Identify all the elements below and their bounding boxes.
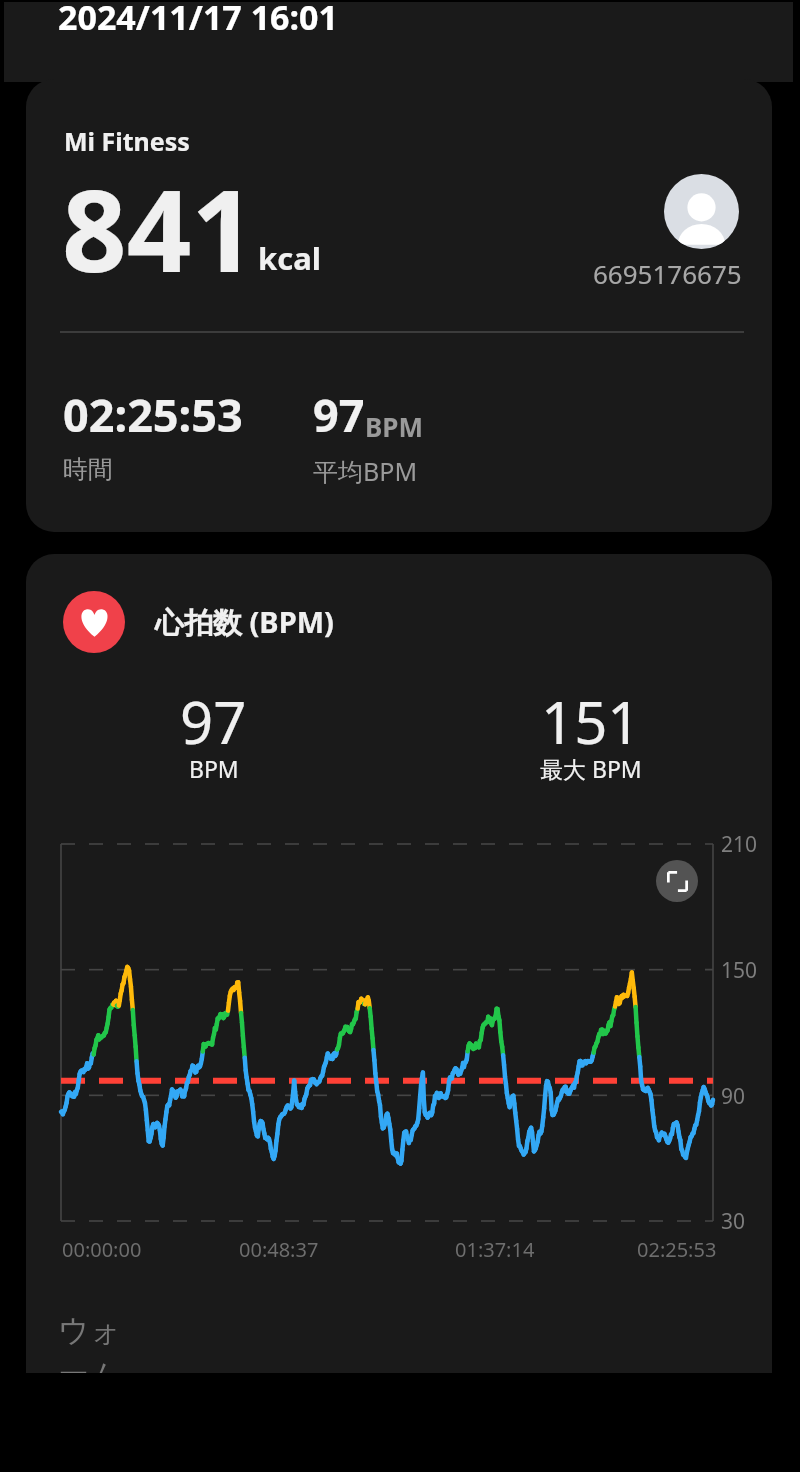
button[interactable]: Mi Fitness	[26, 79, 772, 532]
staticText: 時間	[63, 454, 113, 485]
staticText: 心拍数 (BPM)	[155, 602, 334, 642]
staticText: 6695176675	[593, 256, 742, 291]
button[interactable]: Expand chart	[656, 860, 698, 902]
staticText: 02:25:53	[63, 384, 243, 445]
staticText: ーム	[58, 1355, 121, 1373]
staticText: 最大 BPM	[540, 753, 642, 784]
staticText: 00:00:00	[62, 1236, 142, 1263]
button[interactable]: Profile	[664, 174, 739, 249]
staticText: 150	[721, 956, 758, 985]
staticText: ウォ	[58, 1311, 122, 1350]
staticText: 97	[313, 384, 365, 445]
staticText: 30	[721, 1207, 746, 1236]
staticText: 平均BPM	[313, 454, 418, 488]
staticText: 97	[180, 682, 247, 761]
button[interactable]: 心拍数 (BPM)	[26, 554, 772, 1373]
staticText: BPM	[189, 753, 239, 784]
staticText: kcal	[258, 237, 322, 279]
staticText: 841	[62, 151, 256, 305]
staticText: 90	[721, 1082, 746, 1111]
staticText: 151	[541, 682, 641, 761]
staticText: 2024/11/17 16:01	[58, 0, 338, 40]
staticText: BPM	[365, 409, 423, 444]
staticText: 02:25:53	[637, 1236, 717, 1263]
staticText: 01:37:14	[455, 1236, 535, 1263]
staticText: Mi Fitness	[64, 124, 190, 158]
staticText: 00:48:37	[239, 1236, 319, 1263]
staticText: 210	[721, 830, 758, 859]
